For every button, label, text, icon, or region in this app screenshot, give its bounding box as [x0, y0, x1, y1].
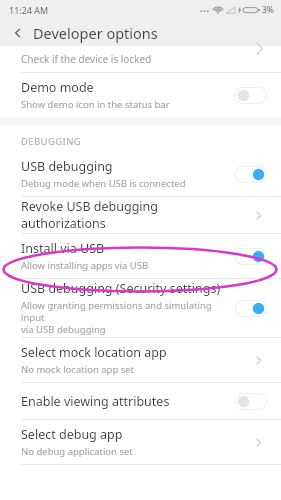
button[interactable]: Enable viewing attributes	[0, 383, 281, 419]
staticText: 11:24 AM	[9, 4, 49, 16]
button[interactable]: Select mock location app	[0, 338, 281, 382]
button[interactable]: Install via USB	[0, 234, 281, 278]
button[interactable]: Open	[249, 351, 267, 369]
staticText: Demo mode	[21, 79, 94, 96]
staticText: Allow granting permissions and simulatin…	[21, 299, 229, 336]
staticText: 3%	[262, 4, 274, 16]
button[interactable]: USB debugging (Security settings)	[0, 279, 281, 337]
staticText: Developer options	[33, 23, 158, 43]
staticText: USB debugging	[21, 158, 113, 175]
button[interactable]: Revoke USB debugging authorizations	[0, 197, 281, 233]
staticText: Allow installing apps via USB	[21, 259, 149, 272]
button[interactable]: Open	[249, 206, 267, 224]
staticText: Install via USB	[21, 240, 105, 257]
button[interactable]: Select debug app	[0, 420, 281, 464]
staticText: No debug application set	[21, 445, 133, 458]
staticText: Select debug app	[21, 426, 123, 443]
button[interactable]: Toggle on	[235, 300, 267, 317]
button[interactable]: Demo mode	[0, 73, 281, 117]
button[interactable]: Open	[249, 433, 267, 451]
button[interactable]: Toggle off	[235, 87, 267, 104]
button[interactable]: Check if the device is locked	[0, 46, 281, 72]
staticText: DEBUGGING	[21, 135, 82, 148]
button[interactable]: Toggle on	[235, 248, 267, 265]
staticText: Show demo icon in the status bar	[21, 98, 170, 111]
button[interactable]: Toggle off	[235, 393, 267, 410]
staticText: Revoke USB debugging authorizations	[21, 198, 243, 232]
button[interactable]: Toggle on	[235, 166, 267, 183]
button[interactable]: Back	[10, 25, 26, 41]
staticText: Debug mode when USB is connected	[21, 177, 186, 190]
staticText: USB debugging (Security settings)	[21, 280, 221, 297]
staticText: Enable viewing attributes	[21, 393, 170, 410]
staticText: Select mock location app	[21, 344, 167, 361]
button[interactable]: Back	[0, 20, 281, 46]
staticText: Check if the device is locked	[21, 52, 152, 66]
button[interactable]: USB debugging	[0, 152, 281, 196]
staticText: No mock location app set	[21, 363, 135, 376]
